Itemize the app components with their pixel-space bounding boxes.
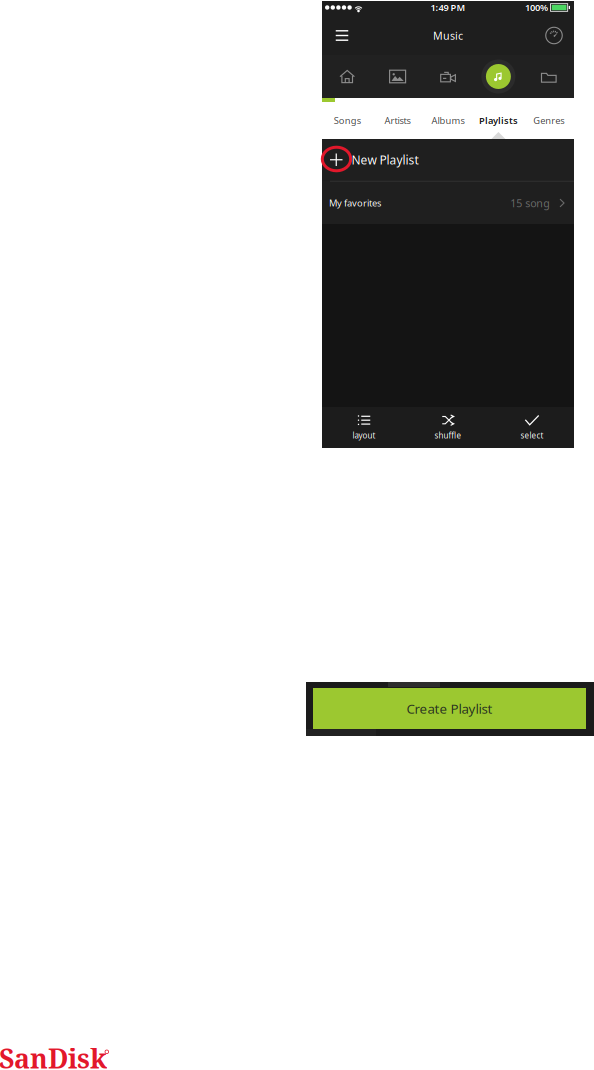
staticText: Music xyxy=(433,28,463,43)
button[interactable]: select xyxy=(490,407,574,448)
button[interactable]: Genres xyxy=(524,102,574,139)
staticText: select xyxy=(520,430,543,441)
button[interactable]: Videos xyxy=(423,55,473,98)
staticText: Create Playlist xyxy=(406,700,492,717)
staticText: Songs xyxy=(334,114,361,127)
button[interactable]: Sound settings xyxy=(538,16,570,55)
staticText: layout xyxy=(352,430,375,441)
staticText: Genres xyxy=(533,114,564,127)
button[interactable]: Photos xyxy=(372,55,423,98)
staticText: Playlists xyxy=(479,114,518,127)
button[interactable]: shuffle xyxy=(406,407,490,448)
staticText: 15 song xyxy=(510,196,550,210)
staticText: 1:49 PM xyxy=(430,1,465,14)
staticText: Artists xyxy=(385,114,411,127)
staticText: SanDisk xyxy=(0,1040,107,1070)
staticText: Albums xyxy=(431,114,464,127)
staticText: New Playlist xyxy=(351,152,418,168)
button[interactable]: Songs xyxy=(322,102,372,139)
button[interactable]: layout xyxy=(322,407,406,448)
button[interactable]: My favorites xyxy=(322,182,574,224)
button[interactable]: Menu xyxy=(326,16,358,55)
button[interactable]: Artists xyxy=(372,102,423,139)
button[interactable]: Albums xyxy=(423,102,473,139)
staticText: shuffle xyxy=(434,430,461,441)
button[interactable]: Home xyxy=(322,55,372,98)
staticText: 100% xyxy=(525,1,548,14)
button[interactable]: New Playlist xyxy=(322,139,574,180)
button[interactable]: Create Playlist xyxy=(313,688,586,729)
button[interactable]: Music xyxy=(473,55,524,98)
staticText: My favorites xyxy=(329,197,381,209)
button[interactable]: Files xyxy=(524,55,574,98)
button[interactable]: Playlists xyxy=(473,102,524,139)
